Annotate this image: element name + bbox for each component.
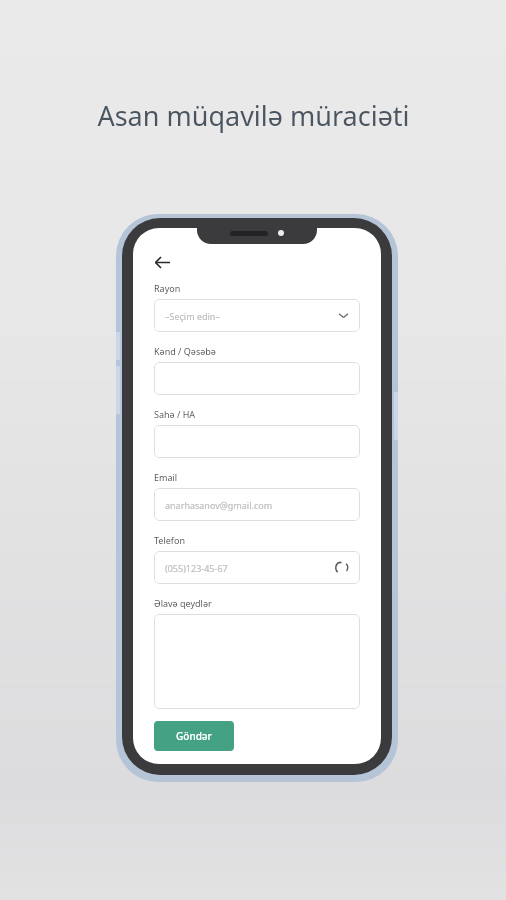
button[interactable] [154,614,360,709]
button[interactable]: Back [154,250,178,274]
staticText: Rayon [154,282,181,294]
staticText: Əlavə qeydlər [154,597,212,609]
button[interactable]: Göndər [154,721,234,751]
staticText: Kənd / Qəsəbə [154,345,216,357]
button[interactable] [154,425,360,458]
staticText: Email [154,471,178,483]
button[interactable] [154,362,360,395]
staticText: Göndər [176,729,212,743]
button[interactable]: anarhasanov@gmail.com [154,488,360,521]
staticText: –Seçim edin– [165,310,220,322]
button[interactable]: –Seçim edin– [154,299,360,332]
staticText: Asan müqavilə müraciəti [97,97,410,134]
staticText: anarhasanov@gmail.com [165,499,273,511]
button[interactable]: (055)123-45-67 [154,551,360,584]
staticText: Telefon [154,534,185,546]
staticText: Sahə / HA [154,408,196,420]
staticText: (055)123-45-67 [165,562,228,574]
